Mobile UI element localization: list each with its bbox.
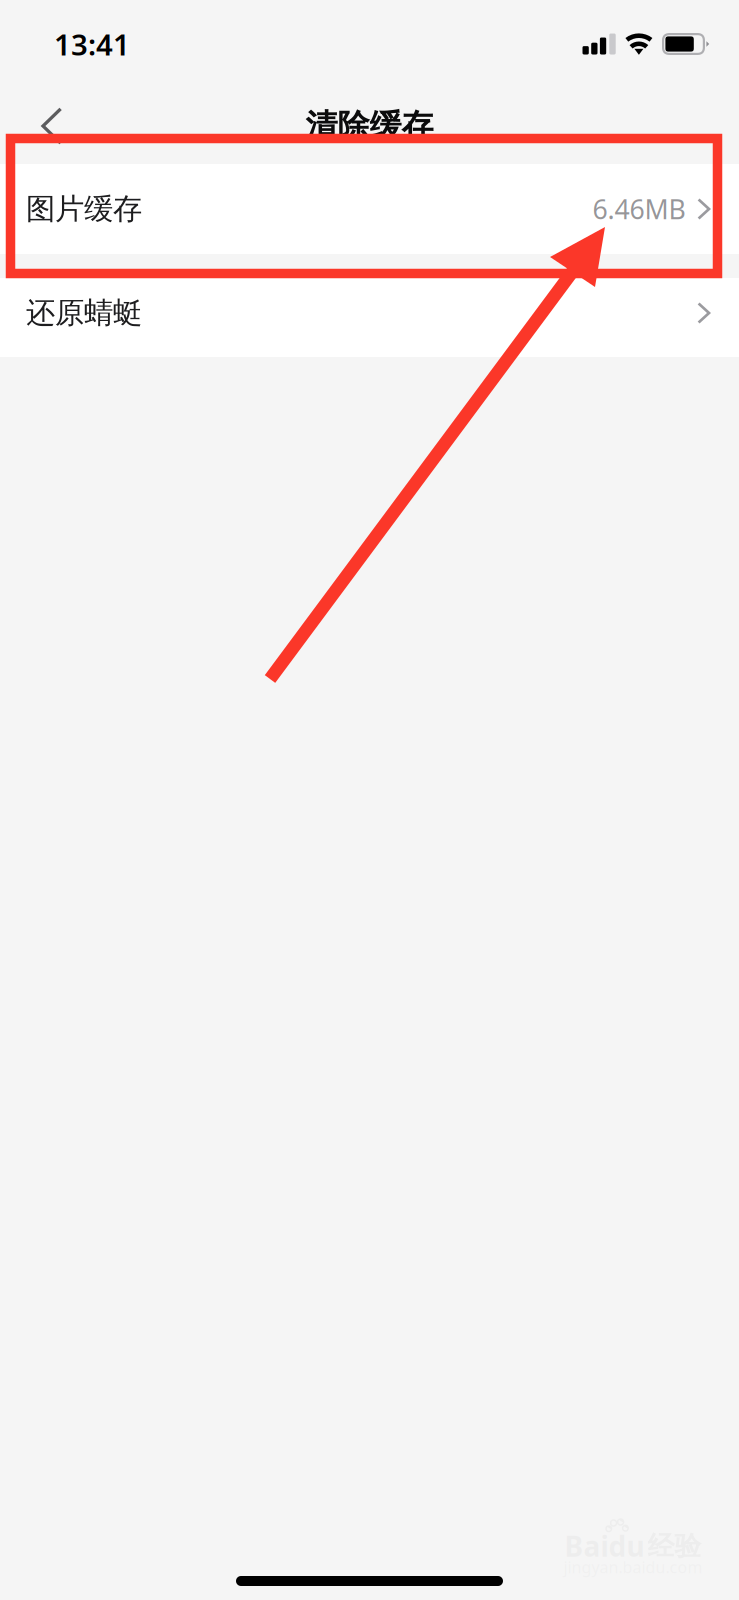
staticText: Baidu — [564, 1527, 644, 1565]
staticText: 还原蜻蜓 — [26, 295, 142, 331]
button[interactable]: 图片缓存 — [0, 164, 739, 254]
staticText: 6.46MB — [593, 191, 686, 227]
staticText: 经验 — [647, 1530, 701, 1562]
button[interactable]: 还原蜻蜓 — [0, 278, 739, 357]
staticText: 清除缓存 — [305, 106, 433, 146]
button[interactable]: Back — [0, 97, 87, 155]
staticText: 图片缓存 — [26, 191, 142, 227]
staticText: 13:41 — [54, 24, 130, 63]
